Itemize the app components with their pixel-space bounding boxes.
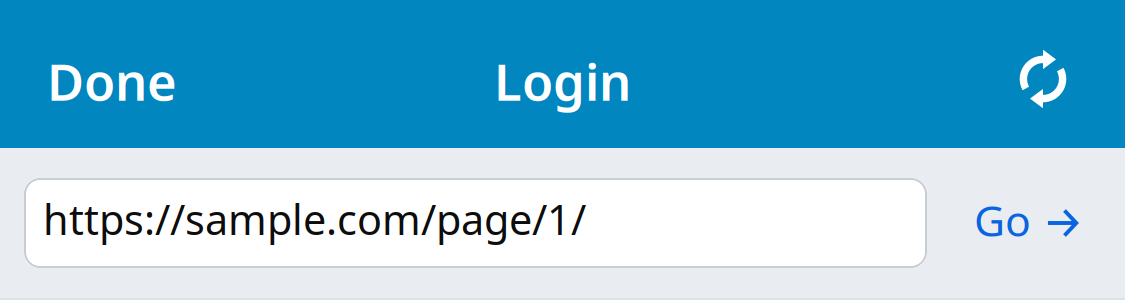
- staticText: Login: [494, 47, 631, 115]
- staticText: Done: [47, 47, 177, 115]
- button[interactable]: Reload: [1004, 42, 1082, 120]
- button[interactable]: Address, https://sample.com/page/1/: [24, 178, 927, 268]
- staticText: Go: [974, 192, 1031, 248]
- staticText: https://sample.com/page/1/: [43, 192, 586, 246]
- button[interactable]: Done: [31, 31, 193, 131]
- button[interactable]: Go: [950, 171, 1103, 275]
